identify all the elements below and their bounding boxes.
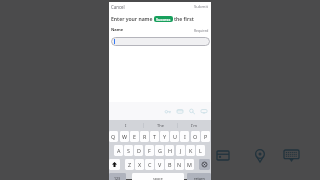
- button[interactable]: X: [135, 159, 144, 170]
- staticText: C: [148, 161, 152, 168]
- staticText: N: [177, 161, 182, 168]
- staticText: S: [127, 147, 130, 154]
- button[interactable]: T: [150, 131, 159, 142]
- button[interactable]: return: [187, 173, 211, 180]
- button[interactable]: O: [191, 131, 200, 142]
- staticText: G: [158, 147, 162, 154]
- staticText: D: [137, 147, 141, 154]
- button[interactable]: H: [165, 145, 174, 156]
- button[interactable]: R: [140, 131, 149, 142]
- staticText: Success: [156, 17, 171, 22]
- staticText: The: [157, 123, 164, 128]
- button[interactable]: Keyboard options: [198, 104, 210, 118]
- staticText: M: [187, 161, 192, 168]
- staticText: F: [148, 147, 151, 154]
- staticText: Required: [194, 28, 209, 33]
- button[interactable]: The: [143, 120, 177, 130]
- button[interactable]: Z: [125, 159, 134, 170]
- button[interactable]: A: [114, 145, 123, 156]
- button[interactable]: S: [124, 145, 133, 156]
- staticText: B: [168, 161, 172, 168]
- staticText: W: [122, 133, 128, 140]
- staticText: Name: [111, 27, 124, 33]
- staticText: K: [189, 147, 193, 154]
- button[interactable]: Q: [109, 131, 118, 142]
- staticText: 123: [114, 176, 121, 180]
- staticText: Cancel: [111, 4, 125, 10]
- button[interactable]: I: [180, 131, 189, 142]
- staticText: the first: [174, 16, 194, 23]
- button[interactable]: Search: [186, 104, 198, 118]
- staticText: X: [138, 161, 142, 168]
- button[interactable]: K: [186, 145, 195, 156]
- staticText: T: [153, 133, 156, 140]
- button[interactable]: B: [165, 159, 174, 170]
- staticText: Enter your name: [111, 16, 153, 23]
- staticText: O: [193, 133, 198, 140]
- button[interactable]: M: [185, 159, 194, 170]
- button[interactable]: C: [145, 159, 154, 170]
- button[interactable]: E: [130, 131, 139, 142]
- staticText: space: [153, 176, 163, 180]
- button[interactable]: G: [155, 145, 164, 156]
- staticText: P: [204, 133, 208, 140]
- button[interactable]: Saved cards: [215, 147, 231, 163]
- button[interactable]: N: [175, 159, 184, 170]
- staticText: I: [125, 123, 127, 128]
- button[interactable]: L: [196, 145, 205, 156]
- button[interactable]: Scan credit card: [174, 104, 186, 118]
- button[interactable]: Backspace: [199, 159, 210, 170]
- staticText: R: [143, 133, 147, 140]
- staticText: H: [168, 147, 172, 154]
- button[interactable]: Submit: [190, 2, 211, 12]
- button[interactable]: 123: [109, 173, 126, 180]
- staticText: L: [199, 147, 202, 154]
- button[interactable]: P: [201, 131, 210, 142]
- button[interactable]: Cancel: [109, 2, 129, 12]
- staticText: V: [158, 161, 162, 168]
- button[interactable]: Keyboard: [282, 147, 300, 165]
- button[interactable]: D: [134, 145, 143, 156]
- staticText: Y: [163, 133, 167, 140]
- button[interactable]: Shift: [109, 159, 120, 170]
- button[interactable]: I'm: [177, 120, 211, 130]
- button[interactable]: Addresses: [252, 147, 268, 163]
- staticText: Q: [111, 133, 116, 140]
- staticText: Z: [128, 161, 132, 168]
- button[interactable]: J: [176, 145, 185, 156]
- button[interactable]: F: [145, 145, 154, 156]
- staticText: A: [117, 147, 121, 154]
- staticText: J: [180, 147, 182, 154]
- button[interactable]: Y: [160, 131, 169, 142]
- button[interactable]: Space: [132, 173, 184, 180]
- button[interactable]: W: [120, 131, 129, 142]
- button[interactable]: I: [109, 120, 143, 130]
- button[interactable]: V: [155, 159, 164, 170]
- button[interactable]: Passwords: [162, 104, 174, 118]
- staticText: E: [133, 133, 136, 140]
- staticText: I'm: [191, 123, 197, 128]
- staticText: I: [184, 133, 186, 140]
- staticText: Submit: [194, 4, 208, 10]
- button[interactable]: U: [170, 131, 179, 142]
- button[interactable]: [111, 37, 210, 46]
- staticText: U: [173, 133, 177, 140]
- staticText: return: [194, 176, 205, 180]
